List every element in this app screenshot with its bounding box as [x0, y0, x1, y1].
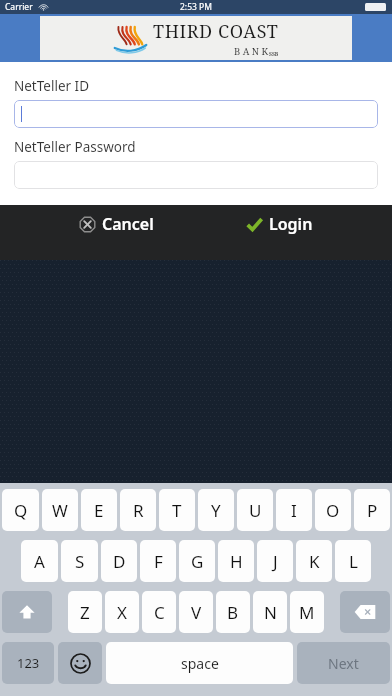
button[interactable]: N	[253, 591, 287, 633]
staticText: K	[309, 550, 320, 573]
staticText: NetTeller ID	[14, 77, 90, 95]
staticText: L	[349, 550, 358, 573]
button[interactable]: Z	[68, 591, 102, 633]
staticText: SSB	[269, 51, 279, 58]
staticText: I	[291, 499, 297, 522]
staticText: U	[249, 499, 262, 522]
button[interactable]: P	[354, 489, 390, 531]
button[interactable]: J	[257, 540, 293, 582]
button[interactable]: M	[290, 591, 324, 633]
button[interactable]: D	[101, 540, 137, 582]
staticText: Next	[328, 654, 359, 673]
staticText: Z	[80, 601, 90, 624]
staticText: F	[154, 550, 163, 573]
staticText: J	[273, 550, 278, 573]
button[interactable]: Cancel	[67, 205, 166, 243]
button[interactable]: K	[296, 540, 332, 582]
staticText: B	[227, 601, 239, 624]
button[interactable]: Q	[2, 489, 39, 531]
staticText: 2:53 PM	[180, 1, 212, 13]
button[interactable]: C	[142, 591, 176, 633]
button[interactable]: A	[21, 540, 58, 582]
staticText: space	[181, 654, 219, 673]
button[interactable]: Login	[234, 205, 325, 243]
button[interactable]: Next	[297, 642, 390, 684]
button[interactable]: 123	[2, 642, 54, 684]
button[interactable]: G	[179, 540, 215, 582]
staticText: NetTeller Password	[14, 138, 136, 156]
button[interactable]: T	[159, 489, 195, 531]
button[interactable]: Shift	[2, 591, 52, 633]
button[interactable]: V	[179, 591, 213, 633]
staticText: N	[264, 601, 277, 624]
staticText: THIRD COAST	[153, 19, 279, 44]
staticText: C	[154, 601, 165, 624]
staticText: E	[94, 499, 104, 522]
staticText: W	[52, 499, 68, 522]
button[interactable]: I	[276, 489, 312, 531]
staticText: X	[117, 601, 127, 624]
staticText: D	[113, 550, 126, 573]
staticText: T	[172, 499, 182, 522]
staticText: B A N K	[234, 45, 269, 58]
button[interactable]: R	[120, 489, 156, 531]
staticText: G	[191, 550, 204, 573]
button[interactable]: Y	[198, 489, 234, 531]
staticText: S	[75, 550, 85, 573]
staticText: Y	[211, 499, 221, 522]
button[interactable]: O	[315, 489, 351, 531]
button[interactable]: X	[105, 591, 139, 633]
staticText: Cancel	[102, 213, 154, 235]
staticText: A	[34, 550, 45, 573]
staticText: P	[367, 499, 378, 522]
button[interactable]: L	[335, 540, 371, 582]
staticText: R	[133, 499, 144, 522]
button[interactable]: S	[61, 540, 98, 582]
button[interactable]: W	[42, 489, 78, 531]
button[interactable]: U	[237, 489, 273, 531]
staticText: H	[230, 550, 243, 573]
button[interactable]: B	[216, 591, 250, 633]
button[interactable]: Emoji	[58, 642, 102, 684]
staticText: 123	[17, 654, 40, 672]
staticText: Login	[269, 213, 313, 235]
button[interactable]: H	[218, 540, 254, 582]
staticText: M	[299, 601, 315, 624]
button[interactable]: F	[140, 540, 176, 582]
staticText: Q	[14, 499, 28, 522]
button[interactable]	[14, 161, 378, 189]
button[interactable]	[14, 100, 378, 128]
staticText: O	[326, 499, 340, 522]
button[interactable]: E	[81, 489, 117, 531]
button[interactable]: Backspace	[340, 591, 390, 633]
staticText: V	[191, 601, 202, 624]
staticText: Carrier	[5, 1, 33, 13]
button[interactable]: space	[106, 642, 293, 684]
